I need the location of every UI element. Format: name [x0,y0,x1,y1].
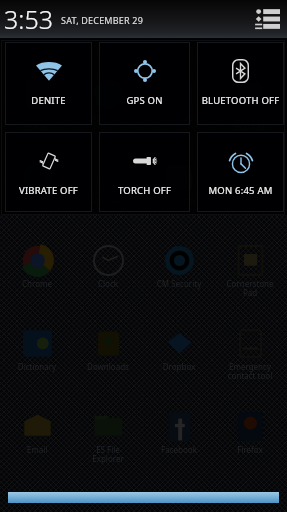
button[interactable]: CM Security [144,244,214,298]
staticText: VIBRATE OFF [5,184,92,197]
staticText: GPS ON [99,94,190,107]
button[interactable]: Firefox [215,410,285,464]
staticText: CM Security [144,278,214,289]
button[interactable]: Quick settings list [252,5,283,33]
button[interactable]: Backup [144,78,214,132]
staticText: TORCH OFF [99,184,190,197]
button[interactable]: Calculator [73,161,143,215]
staticText: Email [2,444,72,455]
button[interactable]: DENITE [5,42,92,125]
button[interactable]: Antivirus [73,78,143,132]
staticText: ES File Explorer [73,444,143,465]
button[interactable]: Clock [73,244,143,298]
staticText: BLUETOOTH OFF [197,94,284,107]
button[interactable]: VIBRATE OFF [5,132,92,212]
staticText: Dropbox [144,361,214,372]
button[interactable]: Barcode Scanner [215,78,285,132]
staticText: Facebook [144,444,214,455]
button[interactable]: Email [2,410,72,464]
button[interactable]: Dropbox [144,327,214,381]
staticText: Adobe Reader [2,112,72,133]
button[interactable]: Calendar [144,161,214,215]
staticText: Firefox [215,444,285,455]
button[interactable]: GPS ON [99,42,190,125]
button[interactable]: Cornerstone Pad [215,244,285,298]
button[interactable]: Dictionary [2,327,72,381]
button[interactable]: BLUETOOTH OFF [197,42,284,125]
staticText: Barcode Scanner [215,112,285,133]
staticText: Clock [73,278,143,289]
button[interactable]: TORCH OFF [99,132,190,212]
button[interactable]: Facebook [144,410,214,464]
staticText: Camera [215,195,285,206]
button[interactable]: Downloads [73,327,143,381]
button[interactable]: Camera [215,161,285,215]
staticText: Downloads [73,361,143,372]
staticText: Dictionary [2,361,72,372]
button[interactable]: Chrome [2,244,72,298]
button[interactable]: Emergency contact tool [215,327,285,381]
staticText: SAT, DECEMBER 29 [61,14,143,26]
staticText: Calendar [144,195,214,206]
button[interactable]: MON 6:45 AM [197,132,284,212]
staticText: MON 6:45 AM [197,184,284,197]
staticText: Browser [2,195,72,206]
staticText: DENITE [5,94,92,107]
staticText: Chrome [2,278,72,289]
button[interactable] [8,492,279,503]
staticText: Cornerstone Pad [215,278,285,299]
staticText: Backup [144,112,214,123]
staticText: 3:53 [4,2,53,36]
staticText: Emergency contact tool [215,361,285,382]
button[interactable]: ES File Explorer [73,410,143,464]
staticText: Antivirus [73,112,143,123]
button[interactable]: Adobe Reader [2,78,72,132]
staticText: Calculator [73,195,143,206]
button[interactable]: Browser [2,161,72,215]
